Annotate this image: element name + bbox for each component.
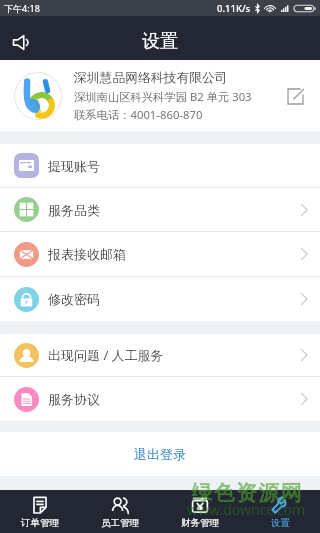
staticText: 绿色资源网: [191, 480, 302, 506]
staticText: 服务协议: [48, 391, 297, 407]
button[interactable]: 财务管理: [160, 490, 240, 533]
staticText: 服务品类: [48, 202, 297, 218]
button[interactable]: 出现问题 / 人工服务: [0, 334, 320, 376]
button[interactable]: 服务品类: [0, 188, 320, 231]
button[interactable]: 设置: [240, 490, 320, 533]
button[interactable]: 深圳慧品网络科技有限公司: [0, 60, 320, 131]
button[interactable]: 提现账号: [0, 144, 320, 187]
button[interactable]: 退出登录: [0, 432, 320, 476]
staticText: 修改密码: [48, 291, 297, 307]
button[interactable]: Announcements: [4, 21, 38, 55]
staticText: 财务管理: [181, 517, 219, 529]
staticText: 设置: [142, 30, 178, 53]
button[interactable]: 修改密码: [0, 277, 320, 321]
staticText: 提现账号: [48, 158, 311, 174]
staticText: 联系电话：4001-860-870: [74, 107, 203, 122]
button[interactable]: 员工管理: [80, 490, 160, 533]
staticText: 出现问题 / 人工服务: [48, 346, 297, 364]
button[interactable]: Edit: [279, 80, 311, 112]
button[interactable]: 服务协议: [0, 377, 320, 421]
staticText: 报表接收邮箱: [48, 246, 297, 262]
staticText: www.downcc.com: [187, 500, 306, 519]
button[interactable]: 报表接收邮箱: [0, 232, 320, 276]
staticText: 退出登录: [134, 446, 186, 462]
staticText: 下午4:18: [4, 2, 40, 14]
staticText: 员工管理: [101, 517, 139, 529]
staticText: 设置: [271, 517, 290, 529]
staticText: 深圳慧品网络科技有限公司: [74, 70, 228, 86]
staticText: 深圳南山区科兴科学园 B2 单元 303: [74, 89, 252, 104]
staticText: 0.11K/s: [217, 2, 251, 15]
button[interactable]: 订单管理: [0, 490, 80, 533]
staticText: 订单管理: [21, 517, 59, 529]
